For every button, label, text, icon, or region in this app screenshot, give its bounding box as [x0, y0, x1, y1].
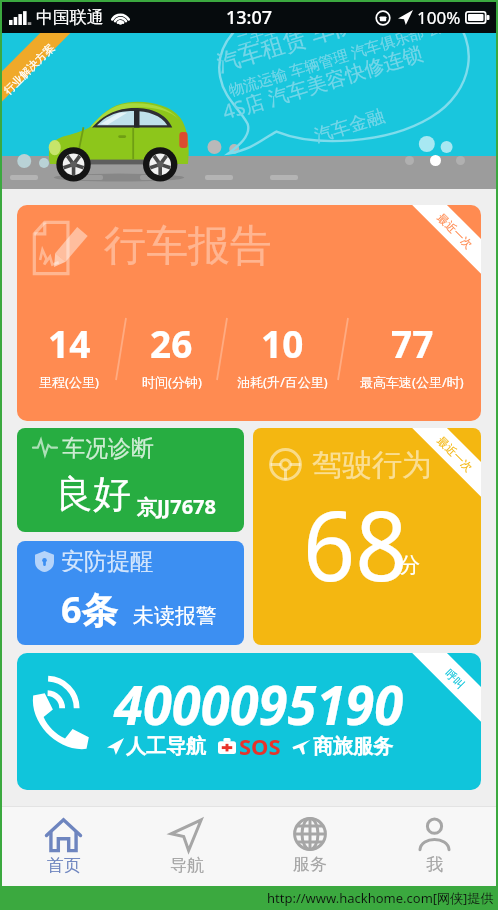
- staticText: 最近一次: [434, 433, 475, 474]
- staticText: 最近一次: [434, 210, 475, 251]
- staticText: 68: [303, 478, 407, 609]
- staticText: 10: [261, 318, 304, 368]
- staticText: 77: [391, 318, 434, 368]
- button[interactable]: 行车报告: [17, 205, 481, 421]
- button[interactable]: 车况诊断: [17, 428, 244, 532]
- staticText: 京JJ7678: [137, 493, 216, 520]
- staticText: 物流运输 车辆管理 汽车俱乐部 公司: [226, 33, 459, 100]
- staticText: 车况诊断: [62, 434, 154, 463]
- staticText: 服务: [293, 854, 327, 875]
- staticText: 良好: [55, 470, 131, 518]
- button[interactable]: 服务: [248, 807, 372, 886]
- staticText: 二手车: [234, 33, 280, 51]
- staticText: 呼叫: [442, 666, 468, 692]
- button[interactable]: 首页: [2, 807, 125, 886]
- staticText: 14: [48, 318, 91, 368]
- staticText: 6条: [61, 585, 118, 634]
- staticText: 驾驶行为: [312, 446, 432, 484]
- staticText: 商旅服务: [313, 734, 393, 759]
- staticText: 安防提醒: [61, 547, 153, 576]
- staticText: 最高车速(公里/时): [360, 373, 464, 391]
- staticText: 未读报警: [133, 603, 217, 629]
- staticText: SOS: [239, 731, 281, 761]
- staticText: 行车报告: [104, 220, 272, 273]
- staticText: 我: [426, 854, 443, 875]
- staticText: 里程(公里): [39, 373, 99, 391]
- button[interactable]: 导航: [125, 807, 248, 886]
- button[interactable]: 驾驶行为: [253, 428, 481, 645]
- staticText: 中国联通: [36, 7, 104, 28]
- staticText: 时间(分钟): [142, 373, 202, 391]
- button[interactable]: 4000095190: [17, 653, 481, 790]
- staticText: 26: [150, 318, 193, 368]
- button[interactable]: Promotion banner: [2, 33, 496, 189]
- staticText: 分: [399, 552, 420, 578]
- staticText: 人工导航: [126, 734, 206, 759]
- staticText: 4S店 汽车美容快修连锁: [219, 39, 426, 126]
- staticText: 汽车金融: [312, 105, 387, 148]
- staticText: http://www.hackhome.com[网侠]提供: [267, 889, 494, 907]
- staticText: 首页: [47, 855, 81, 876]
- staticText: 13:07: [226, 5, 273, 30]
- button[interactable]: 安防提醒: [17, 541, 244, 645]
- staticText: 汽车租赁 车队管理 保险: [213, 33, 453, 77]
- button[interactable]: 我: [372, 807, 496, 886]
- staticText: 导航: [170, 855, 204, 876]
- staticText: 油耗(升/百公里): [237, 373, 328, 391]
- staticText: 4000095190: [114, 668, 404, 740]
- staticText: 100%: [417, 6, 461, 29]
- staticText: 行业解决方案: [2, 41, 57, 97]
